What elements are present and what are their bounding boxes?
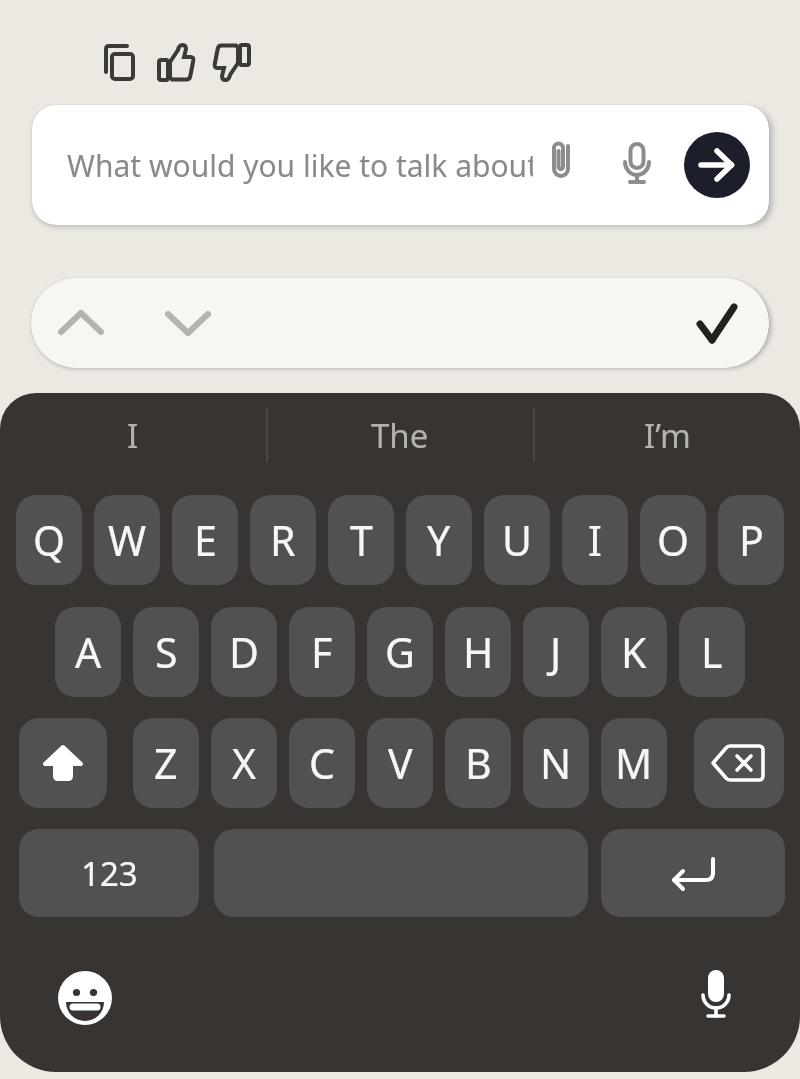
button[interactable]: D <box>211 607 277 697</box>
button[interactable] <box>684 132 750 198</box>
staticText: B <box>465 735 492 791</box>
button[interactable]: Q <box>16 495 82 585</box>
staticText: H <box>463 624 494 680</box>
staticText: Q <box>33 512 66 568</box>
button[interactable]: E <box>172 495 238 585</box>
staticText: Y <box>427 512 451 568</box>
button[interactable]: I’m <box>534 405 800 465</box>
staticText: U <box>502 512 532 568</box>
staticText: I’m <box>644 413 691 458</box>
button[interactable]: I <box>0 405 266 465</box>
staticText: R <box>270 512 296 568</box>
staticText: X <box>232 735 257 791</box>
staticText: M <box>615 735 653 791</box>
button[interactable]: R <box>250 495 316 585</box>
button[interactable]: 123 <box>19 829 199 917</box>
staticText: O <box>657 512 690 568</box>
button[interactable]: M <box>601 718 667 808</box>
button[interactable]: X <box>211 718 277 808</box>
staticText: G <box>385 624 415 680</box>
staticText: D <box>229 624 259 680</box>
staticText: K <box>621 624 647 680</box>
button[interactable] <box>214 829 588 917</box>
button[interactable]: Y <box>406 495 472 585</box>
button[interactable]: N <box>523 718 589 808</box>
button[interactable]: W <box>94 495 160 585</box>
button[interactable]: F <box>289 607 355 697</box>
staticText: P <box>739 512 764 568</box>
button[interactable]: A <box>55 607 121 697</box>
button[interactable]: C <box>289 718 355 808</box>
button[interactable] <box>49 300 113 346</box>
button[interactable]: O <box>640 495 706 585</box>
staticText: 123 <box>81 851 138 896</box>
button[interactable] <box>99 40 141 84</box>
button[interactable] <box>687 296 747 352</box>
button[interactable] <box>694 718 784 808</box>
staticText: S <box>155 624 178 680</box>
button[interactable] <box>57 970 113 1026</box>
staticText: T <box>350 512 373 568</box>
button[interactable]: J <box>523 607 589 697</box>
staticText: N <box>540 735 572 791</box>
button[interactable] <box>601 829 785 917</box>
staticText: V <box>388 735 413 791</box>
button[interactable]: I <box>562 495 628 585</box>
staticText: F <box>311 624 333 680</box>
button[interactable]: S <box>133 607 199 697</box>
button[interactable] <box>212 42 252 84</box>
staticText: J <box>550 624 562 680</box>
staticText: The <box>371 413 429 458</box>
staticText: A <box>75 624 102 680</box>
button[interactable]: Z <box>133 718 199 808</box>
button[interactable]: L <box>679 607 745 697</box>
button[interactable] <box>19 718 107 808</box>
staticText: C <box>309 735 335 791</box>
button[interactable]: V <box>367 718 433 808</box>
staticText: L <box>701 624 723 680</box>
button[interactable] <box>614 141 660 191</box>
staticText: W <box>108 512 147 568</box>
staticText: I <box>127 413 139 458</box>
button[interactable]: P <box>718 495 784 585</box>
button[interactable]: U <box>484 495 550 585</box>
button[interactable]: B <box>445 718 511 808</box>
staticText: E <box>194 512 217 568</box>
button[interactable]: H <box>445 607 511 697</box>
staticText: Z <box>154 735 178 791</box>
button[interactable] <box>694 968 738 1026</box>
button[interactable] <box>542 139 578 191</box>
button[interactable]: G <box>367 607 433 697</box>
button[interactable] <box>156 300 220 346</box>
staticText: What would you like to talk about <box>67 145 533 186</box>
button[interactable] <box>156 41 196 83</box>
button[interactable]: The <box>267 405 533 465</box>
button[interactable]: T <box>328 495 394 585</box>
button[interactable]: K <box>601 607 667 697</box>
staticText: I <box>588 512 602 568</box>
